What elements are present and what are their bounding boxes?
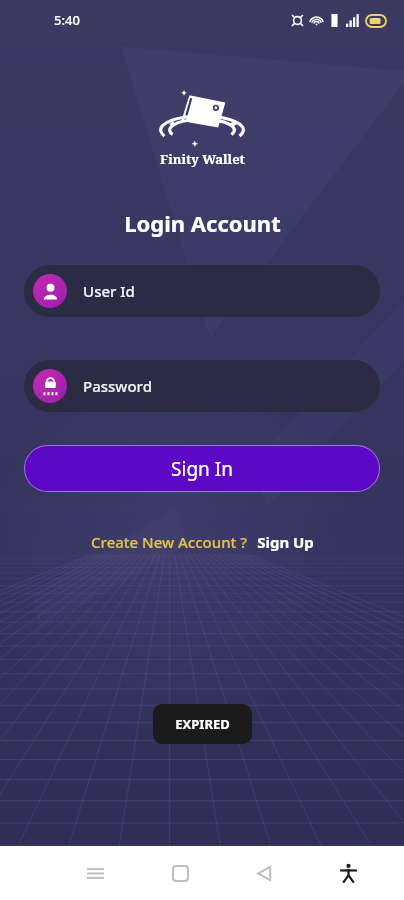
staticText: 5:40 — [54, 11, 80, 29]
button[interactable]: Recents — [53, 846, 138, 900]
staticText: EXPIRED — [175, 715, 230, 733]
button[interactable]: Accessibility — [306, 846, 390, 900]
button[interactable]: User Id — [24, 265, 380, 317]
staticText: Login Account — [124, 208, 281, 238]
button[interactable]: Back — [222, 846, 306, 900]
button[interactable]: Home — [138, 846, 222, 900]
staticText: Password — [83, 376, 152, 396]
button[interactable]: Sign Up — [257, 532, 314, 552]
staticText: Sign In — [171, 456, 233, 482]
button[interactable]: Create New Account ? — [91, 532, 247, 552]
staticText: Finity Wallet — [160, 150, 245, 168]
button[interactable]: Password — [24, 360, 380, 412]
button[interactable]: Sign In — [24, 445, 380, 492]
staticText: User Id — [83, 281, 135, 301]
staticText: Sign Up — [257, 532, 314, 552]
staticText: Create New Account ? — [91, 532, 247, 552]
